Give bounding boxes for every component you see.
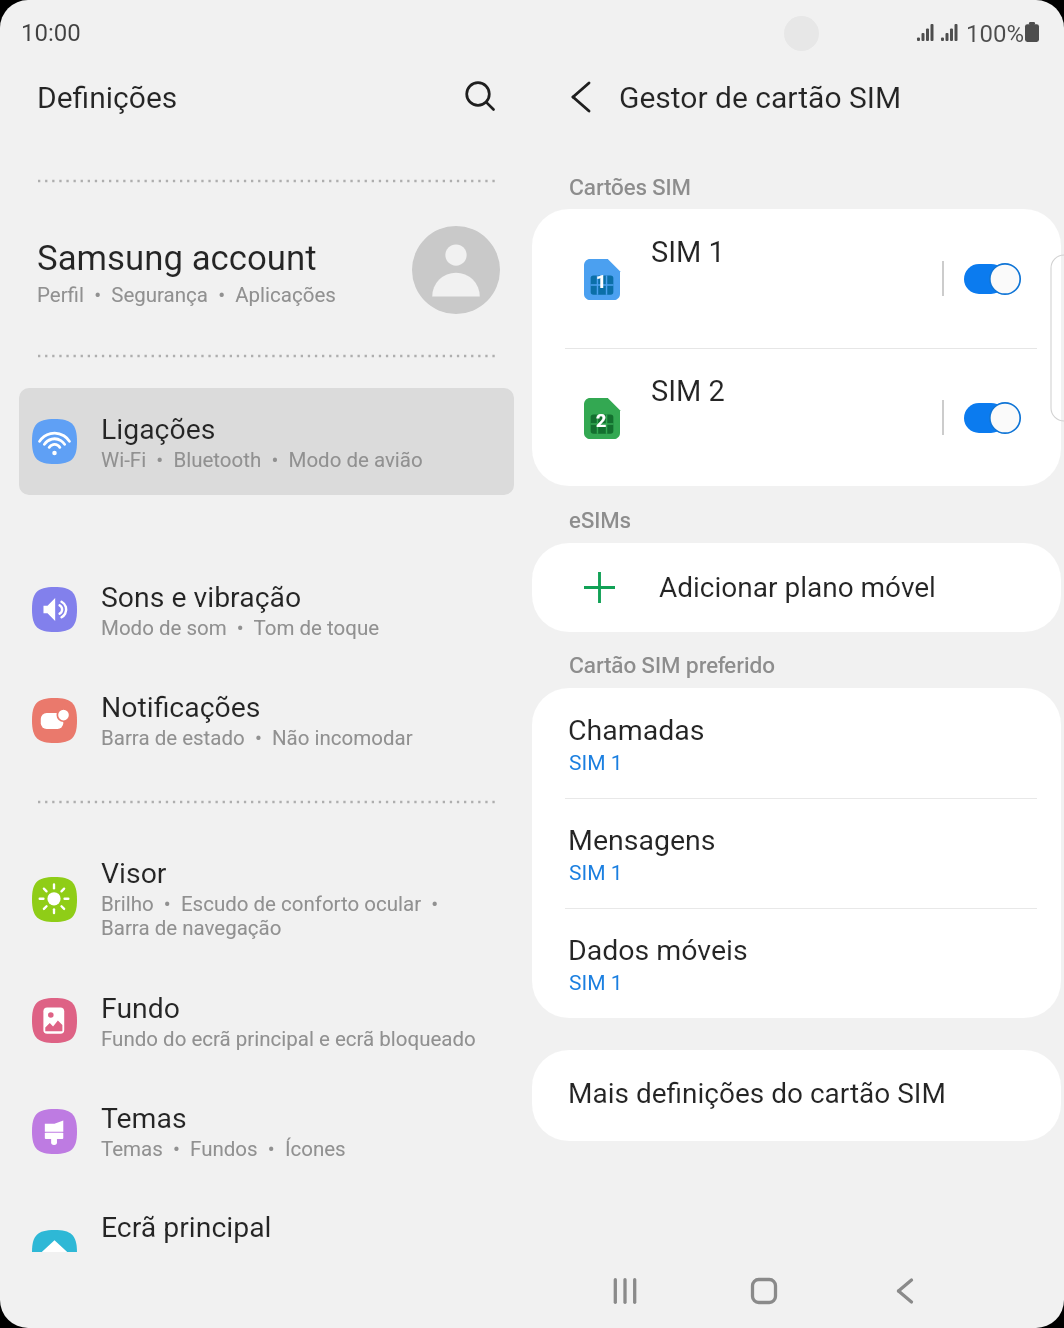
staticText: Ecrã principal: [101, 1211, 272, 1244]
staticText: Mais definições do cartão SIM: [568, 1077, 946, 1110]
button[interactable]: Toggle SIM 2: [964, 403, 1006, 433]
staticText: Definições: [37, 80, 178, 115]
staticText: 2: [596, 410, 607, 431]
button[interactable]: Temas: [19, 1077, 514, 1179]
staticText: Mensagens: [568, 824, 716, 857]
button[interactable]: Chamadas: [532, 688, 1061, 798]
button[interactable]: Ecrã principal: [19, 1186, 514, 1252]
staticText: Chamadas: [568, 714, 705, 747]
staticText: Visor: [101, 857, 167, 890]
staticText: Temas: [101, 1102, 187, 1135]
staticText: SIM 1: [569, 751, 623, 776]
button[interactable]: Notificações: [19, 666, 514, 768]
staticText: Samsung account: [37, 238, 317, 279]
staticText: Cartão SIM preferido: [569, 653, 776, 679]
button[interactable]: Home: [732, 1259, 796, 1323]
staticText: SIM 1: [651, 235, 725, 269]
staticText: Dados móveis: [568, 934, 748, 967]
staticText: Modo de som • Tom de toque: [101, 616, 380, 640]
staticText: Cartões SIM: [569, 175, 692, 201]
staticText: Wi-Fi • Bluetooth • Modo de avião: [101, 448, 423, 472]
button[interactable]: Mensagens: [532, 798, 1061, 908]
staticText: Temas • Fundos • Ícones: [101, 1137, 346, 1161]
staticText: Perfil • Segurança • Aplicações: [37, 283, 336, 307]
button[interactable]: Back: [873, 1259, 937, 1323]
button[interactable]: 2: [532, 348, 1061, 486]
staticText: Barra de estado • Não incomodar: [101, 726, 413, 750]
staticText: Gestor de cartão SIM: [619, 80, 902, 115]
button[interactable]: Adicionar plano móvel: [532, 543, 1061, 632]
button[interactable]: Search: [452, 68, 504, 120]
staticText: 100%: [966, 20, 1025, 48]
button[interactable]: Recents: [593, 1259, 657, 1323]
staticText: Adicionar plano móvel: [659, 571, 936, 604]
button[interactable]: Back: [554, 70, 608, 124]
button[interactable]: Sons e vibração: [19, 556, 514, 658]
staticText: Ligações: [101, 413, 216, 446]
staticText: SIM 1: [569, 861, 623, 886]
button[interactable]: Definições: [19, 62, 439, 136]
staticText: Fundo do ecrã principal e ecrã bloqueado: [101, 1027, 476, 1051]
button[interactable]: Ligações: [19, 388, 514, 495]
button[interactable]: 1: [532, 209, 1061, 348]
staticText: eSIMs: [569, 508, 631, 534]
staticText: Notificações: [101, 691, 261, 724]
button[interactable]: Fundo: [19, 967, 514, 1069]
staticText: Sons e vibração: [101, 581, 302, 614]
staticText: SIM 1: [569, 971, 623, 996]
staticText: 10:00: [21, 19, 81, 47]
staticText: SIM 2: [651, 374, 725, 408]
button[interactable]: Toggle SIM 1: [964, 264, 1006, 294]
button[interactable]: Visor: [19, 832, 514, 944]
button[interactable]: Samsung account: [19, 216, 513, 324]
staticText: Fundo: [101, 992, 180, 1025]
staticText: 1: [596, 271, 607, 292]
button[interactable]: Dados móveis: [532, 908, 1061, 1018]
staticText: Brilho • Escudo de conforto ocular • Bar…: [101, 892, 439, 940]
button[interactable]: Mais definições do cartão SIM: [532, 1050, 1061, 1141]
